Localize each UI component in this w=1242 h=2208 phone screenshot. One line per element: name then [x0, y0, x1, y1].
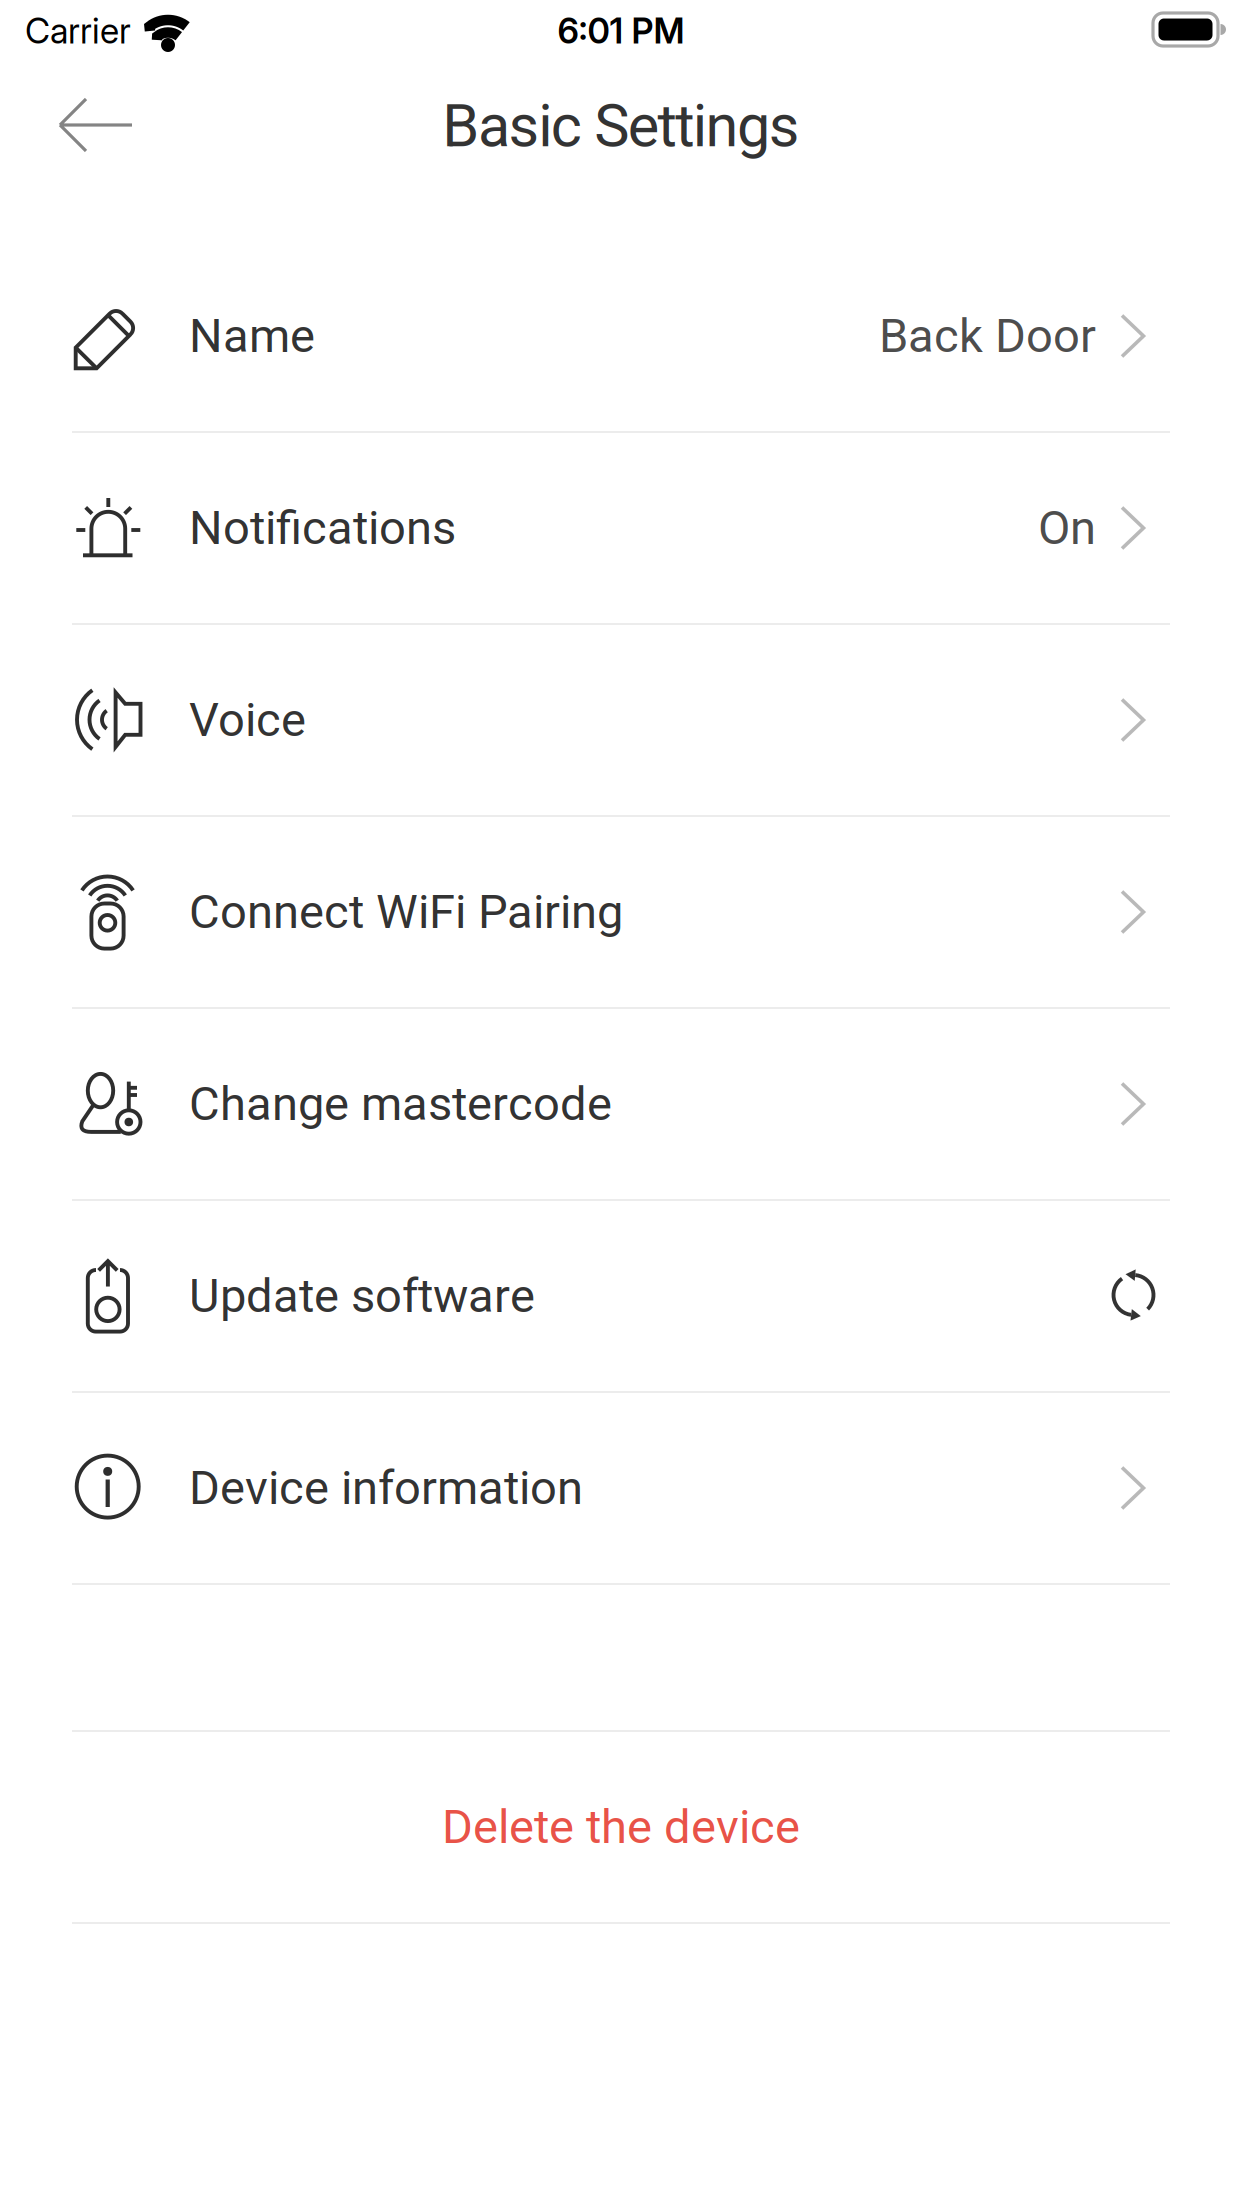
button[interactable]: Connect WiFi Pairing [0, 817, 1242, 1007]
staticText: 6:01 PM [557, 10, 684, 52]
staticText: Back Door [879, 308, 1096, 364]
staticText: Carrier [25, 10, 131, 52]
button[interactable]: Back [0, 62, 170, 190]
staticText: Update software [189, 1268, 535, 1324]
button[interactable]: Voice [0, 625, 1242, 815]
staticText: Voice [189, 692, 306, 748]
button[interactable]: Notifications [0, 433, 1242, 623]
staticText: Connect WiFi Pairing [189, 884, 623, 940]
button[interactable]: Device information [0, 1393, 1242, 1583]
button[interactable]: Name [0, 241, 1242, 431]
staticText: Delete the device [442, 1799, 800, 1855]
staticText: Name [189, 308, 315, 364]
staticText: Device information [189, 1460, 583, 1516]
staticText: On [1038, 500, 1096, 556]
staticText: Change mastercode [189, 1076, 612, 1132]
button[interactable]: Update software [0, 1201, 1242, 1391]
staticText: Notifications [189, 500, 456, 556]
staticText: Basic Settings [442, 91, 800, 161]
button[interactable]: Change mastercode [0, 1009, 1242, 1199]
button[interactable]: Delete the device [0, 1732, 1242, 1922]
